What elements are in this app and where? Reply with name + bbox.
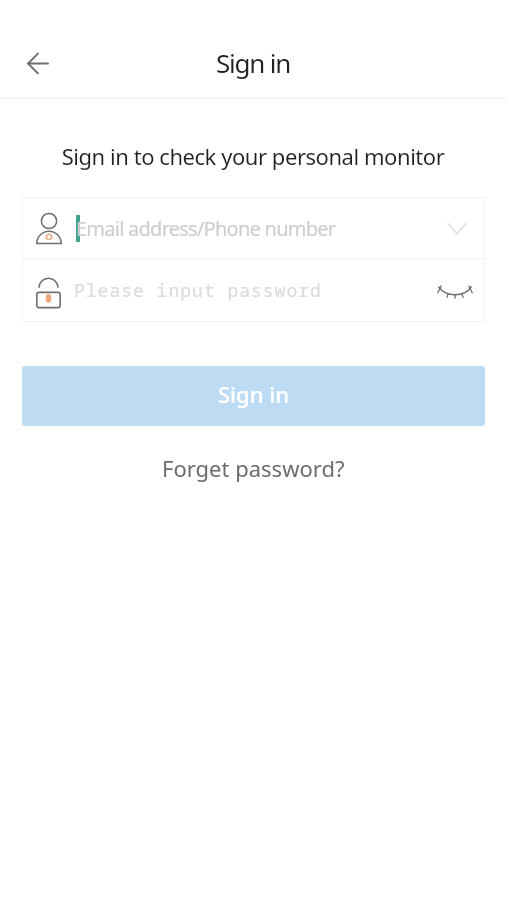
button[interactable]: Email address/Phone number [22, 198, 485, 258]
staticText: Sign in [216, 45, 291, 80]
button[interactable]: Sign in [22, 366, 485, 426]
button[interactable]: Show saved accounts [437, 208, 477, 248]
staticText: Forget password? [162, 453, 345, 483]
button[interactable]: Forget password? [148, 443, 359, 493]
staticText: Sign in to check your personal monitor [0, 141, 506, 171]
button[interactable]: Show password [433, 270, 475, 312]
button[interactable]: Back [13, 39, 61, 87]
staticText: Email address/Phone number [76, 215, 336, 242]
staticText: Please input password [74, 278, 322, 303]
button[interactable]: Please input password [22, 260, 485, 321]
staticText: Sign in [218, 379, 289, 409]
